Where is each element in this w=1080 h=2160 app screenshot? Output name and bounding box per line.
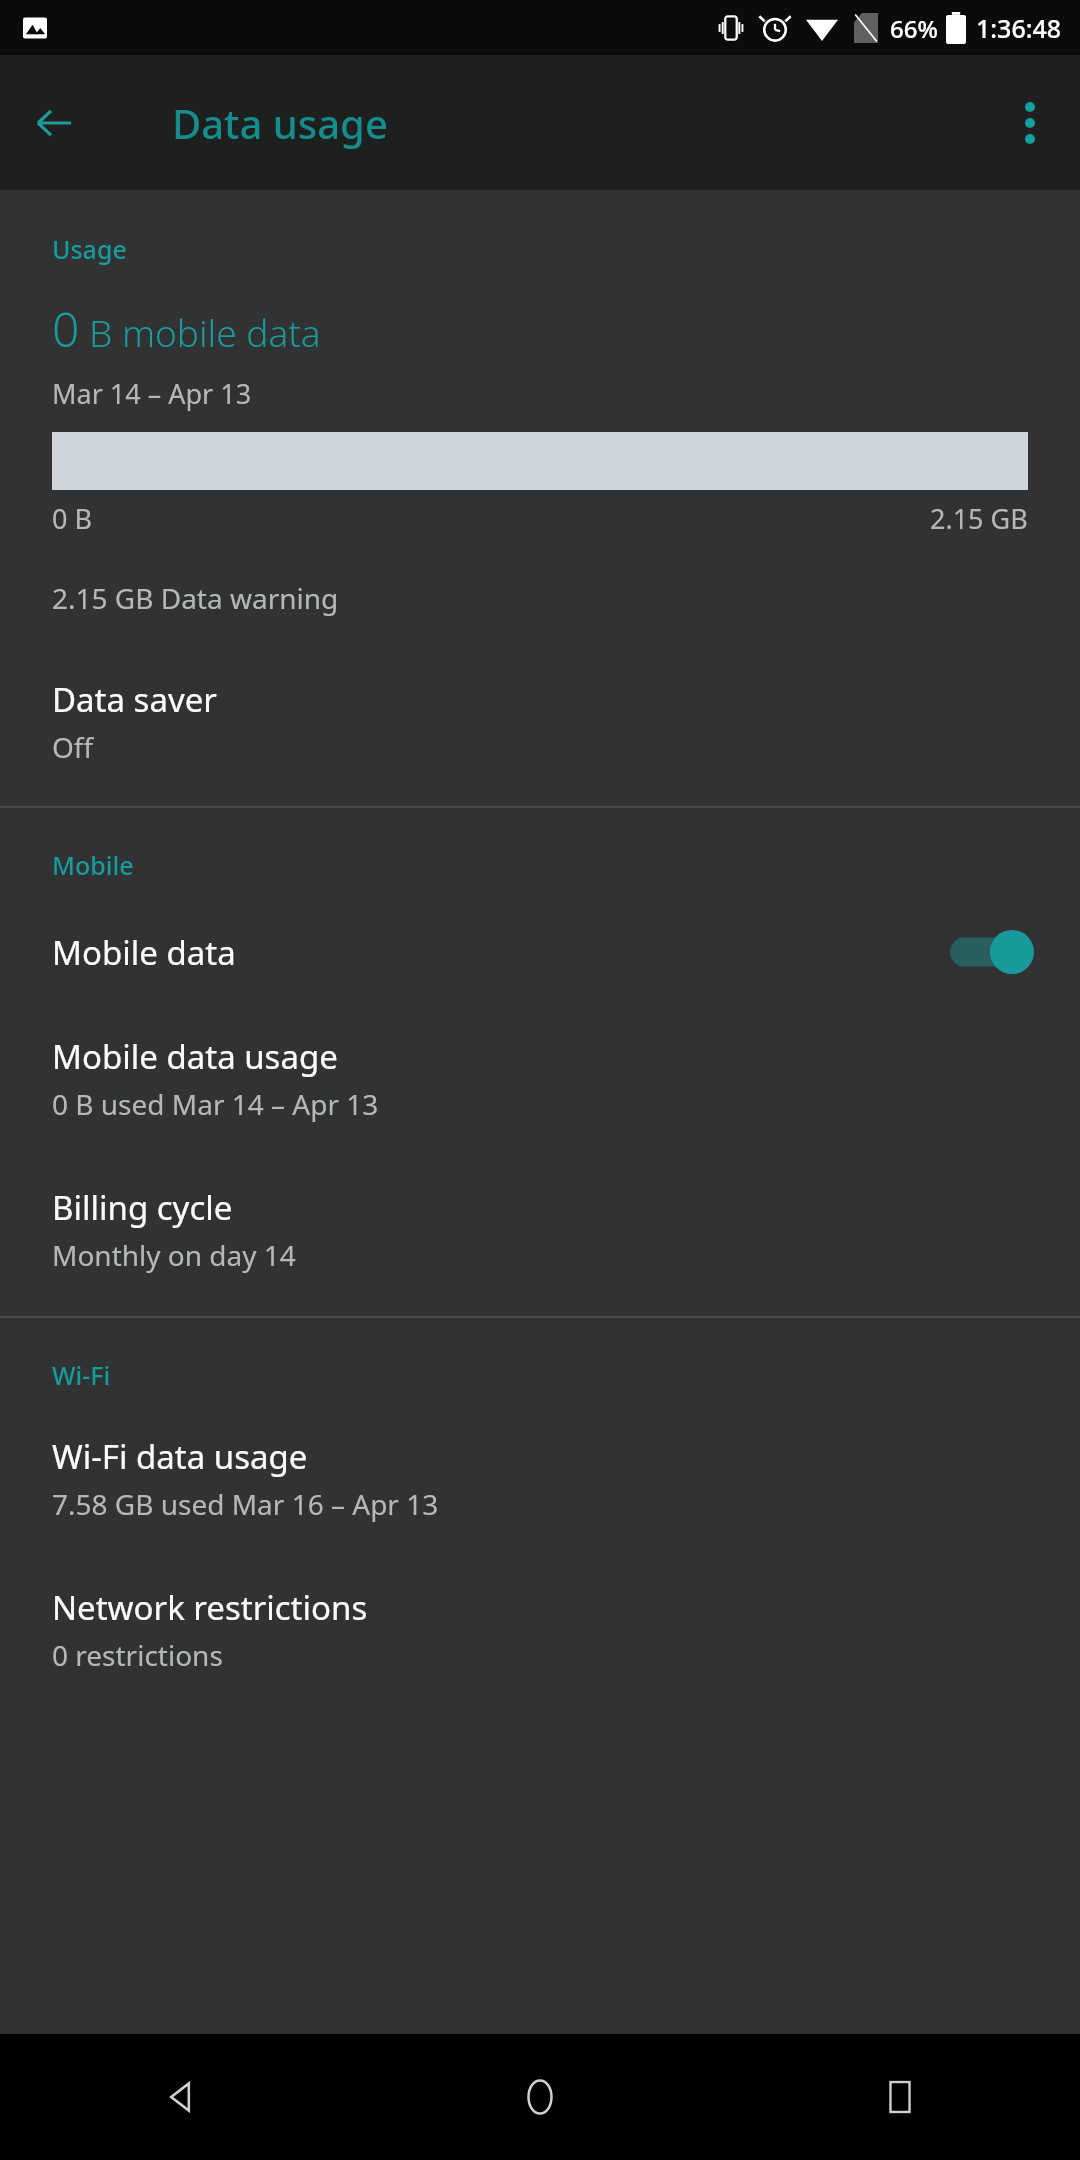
staticText: Mobile data usage	[52, 1034, 338, 1079]
staticText: 2.15 GB Data warning	[52, 579, 339, 617]
staticText: Mobile data	[52, 930, 950, 975]
staticText: 0	[52, 296, 80, 361]
staticText: 1:36:48	[976, 11, 1062, 45]
button[interactable]: Network restrictions	[0, 1547, 1080, 1704]
button[interactable]: Data saver	[0, 635, 1080, 806]
staticText: 7.58 GB used Mar 16 – Apr 13	[52, 1485, 439, 1523]
button[interactable]: Back	[0, 2034, 360, 2160]
staticText: Data saver	[52, 677, 217, 722]
button[interactable]: Home	[360, 2034, 720, 2160]
staticText: Mar 14 – Apr 13	[52, 375, 252, 412]
button[interactable]: More options	[994, 87, 1066, 159]
staticText: 0 restrictions	[52, 1636, 223, 1674]
button[interactable]: Mobile data toggle	[950, 928, 1036, 976]
staticText: Wi-Fi data usage	[52, 1434, 308, 1479]
staticText: Data usage	[172, 96, 388, 150]
button[interactable]: Recents	[720, 2034, 1080, 2160]
button[interactable]: Mobile data	[0, 882, 1080, 1006]
staticText: Usage	[52, 232, 127, 266]
button[interactable]: Billing cycle	[0, 1147, 1080, 1316]
staticText: 2.15 GB	[930, 500, 1028, 537]
staticText: Monthly on day 14	[52, 1236, 296, 1274]
staticText: Billing cycle	[52, 1185, 233, 1230]
button[interactable]: Back	[18, 87, 90, 159]
button[interactable]: 2.15 GB Data warning	[0, 537, 1080, 635]
staticText: B mobile data	[89, 307, 321, 357]
staticText: 66%	[890, 12, 938, 45]
staticText: Network restrictions	[52, 1585, 368, 1630]
button[interactable]: Mobile data usage	[0, 1006, 1080, 1147]
staticText: 0 B used Mar 14 – Apr 13	[52, 1085, 379, 1123]
staticText: 0 B	[52, 500, 93, 537]
staticText: Wi-Fi	[52, 1358, 111, 1392]
button[interactable]: Wi-Fi data usage	[0, 1392, 1080, 1547]
staticText: Mobile	[52, 848, 134, 882]
staticText: Off	[52, 728, 94, 766]
